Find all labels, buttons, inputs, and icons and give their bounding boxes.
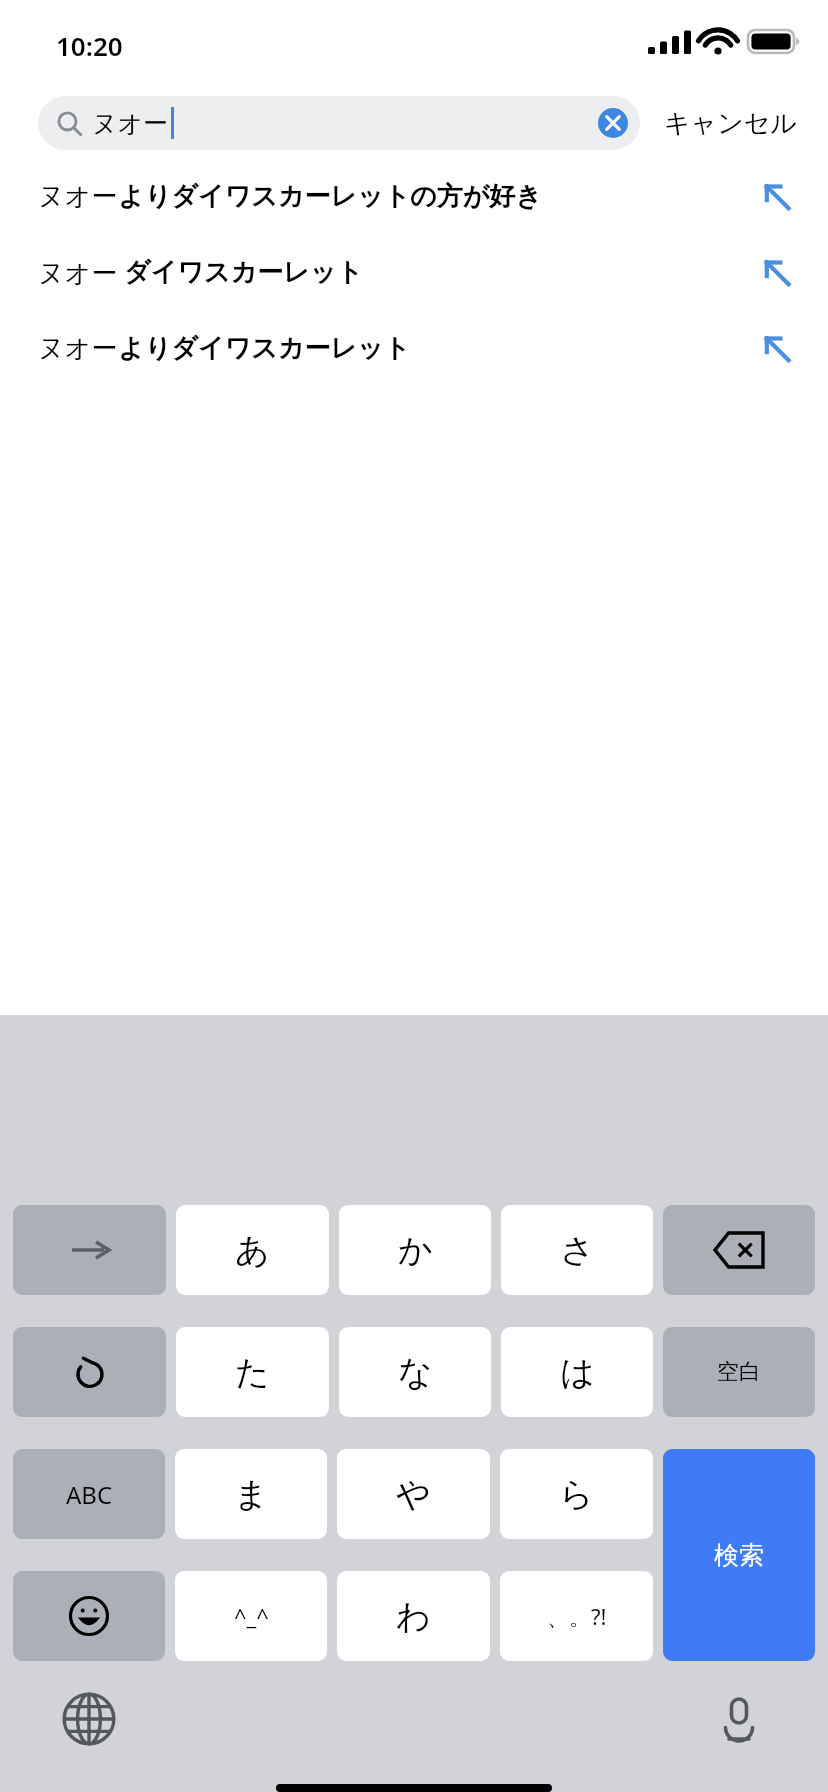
button[interactable]: か [339, 1205, 491, 1295]
staticText: た [235, 1351, 270, 1394]
staticText: 空白 [717, 1358, 761, 1386]
button[interactable]: 検索 [663, 1449, 815, 1661]
button[interactable]: あ [176, 1205, 329, 1295]
staticText: あ [235, 1229, 270, 1272]
staticText: ^_^ [234, 1601, 269, 1631]
button[interactable]: Emoji [13, 1571, 165, 1661]
button[interactable]: Move cursor right [13, 1205, 166, 1295]
staticText: ヌオー [38, 332, 118, 365]
button[interactable]: Delete [663, 1205, 815, 1295]
staticText: ら [559, 1473, 594, 1516]
staticText: ま [234, 1473, 269, 1516]
button[interactable]: な [339, 1327, 491, 1417]
button[interactable]: さ [501, 1205, 653, 1295]
staticText: 、。?! [547, 1601, 607, 1631]
button[interactable]: は [501, 1327, 653, 1417]
button[interactable]: 、。?! [500, 1571, 653, 1661]
staticText: か [398, 1229, 433, 1272]
staticText: ABC [66, 1478, 113, 1511]
button[interactable]: ABC [13, 1449, 165, 1539]
staticText: な [398, 1351, 433, 1394]
button[interactable]: Clear text [598, 108, 628, 138]
button[interactable]: わ [337, 1571, 490, 1661]
button[interactable]: ヌオー [0, 234, 828, 310]
staticText: ヌオー [92, 108, 169, 139]
staticText: は [560, 1351, 595, 1394]
button[interactable]: Undo [13, 1327, 166, 1417]
button[interactable]: 空白 [663, 1327, 815, 1417]
button[interactable]: Change keyboard [56, 1686, 122, 1752]
staticText: よりダイワスカーレットの方が好き [118, 180, 542, 213]
button[interactable]: ま [175, 1449, 327, 1539]
staticText: さ [560, 1229, 595, 1272]
button[interactable]: ヌオー [38, 96, 640, 150]
button[interactable]: キャンセル [662, 99, 800, 148]
staticText: キャンセル [664, 107, 798, 140]
staticText: よりダイワスカーレット [118, 332, 411, 365]
staticText: 検索 [714, 1540, 764, 1571]
button[interactable]: ヌオー [0, 158, 828, 234]
staticText: ヌオー [38, 254, 124, 290]
staticText: ヌオー [38, 180, 118, 213]
button[interactable]: ^_^ [175, 1571, 327, 1661]
staticText: や [396, 1473, 431, 1516]
button[interactable]: ヌオー [0, 310, 828, 386]
button[interactable]: Dictation [706, 1686, 772, 1752]
button[interactable]: た [176, 1327, 329, 1417]
staticText: 10:20 [56, 28, 123, 63]
staticText: わ [396, 1595, 431, 1638]
button[interactable]: や [337, 1449, 490, 1539]
button[interactable]: ら [500, 1449, 653, 1539]
staticText: ダイワスカーレット [124, 256, 363, 289]
